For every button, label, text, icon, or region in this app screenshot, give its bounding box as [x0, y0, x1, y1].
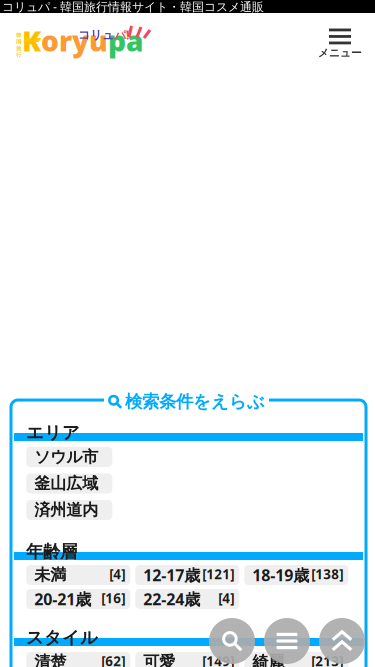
- staticText: 清楚: [34, 652, 66, 667]
- button[interactable]: 20-21歳: [26, 589, 130, 609]
- staticText: パ!: [114, 27, 129, 43]
- button[interactable]: 可愛: [135, 652, 239, 667]
- staticText: 18-19歳: [252, 564, 309, 586]
- staticText: 検索条件をえらぶ: [125, 391, 265, 412]
- staticText: y: [72, 22, 89, 59]
- staticText: K: [22, 22, 41, 59]
- staticText: [4]: [109, 565, 125, 583]
- staticText: メニュー: [318, 46, 362, 59]
- staticText: u: [89, 29, 108, 66]
- button[interactable]: 18-19歳: [244, 565, 348, 585]
- staticText: y: [72, 29, 89, 66]
- button[interactable]: メニュー: [264, 618, 310, 664]
- staticText: [62]: [101, 652, 125, 667]
- staticText: [138]: [311, 565, 343, 583]
- staticText: p: [108, 22, 126, 59]
- staticText: a: [126, 29, 143, 66]
- staticText: K: [22, 29, 41, 66]
- staticText: u: [89, 22, 108, 59]
- button[interactable]: メニュー: [318, 28, 362, 60]
- staticText: 20-21歳: [34, 588, 91, 610]
- staticText: [16]: [101, 589, 125, 607]
- staticText: 可愛: [143, 652, 175, 667]
- staticText: r: [59, 22, 72, 59]
- staticText: [121]: [202, 565, 234, 583]
- staticText: r: [59, 29, 72, 66]
- staticText: 済州道内: [34, 500, 98, 520]
- staticText: 未満: [34, 565, 66, 585]
- staticText: 12-17歳: [143, 564, 200, 586]
- staticText: p: [108, 29, 126, 66]
- button[interactable]: 釜山広域: [26, 473, 112, 493]
- staticText: a: [126, 22, 143, 59]
- staticText: コリュ: [78, 28, 114, 42]
- button[interactable]: 12-17歳: [135, 565, 239, 585]
- staticText: ソウル市: [34, 447, 98, 467]
- staticText: 年齢層: [26, 541, 77, 562]
- button[interactable]: 未満: [26, 565, 130, 585]
- button[interactable]: 検索: [209, 618, 255, 664]
- staticText: スタイル: [26, 627, 98, 648]
- button[interactable]: 済州道内: [26, 500, 112, 520]
- button[interactable]: 綺麗: [244, 652, 348, 667]
- button[interactable]: ソウル市: [26, 447, 112, 467]
- staticText: o: [41, 29, 59, 66]
- staticText: コリュパ - 韓国旅行情報サイト・韓国コスメ通販: [2, 0, 264, 14]
- staticText: 綺麗: [252, 652, 284, 667]
- button[interactable]: 清楚: [26, 652, 130, 667]
- staticText: 韓国旅行: [16, 32, 21, 58]
- staticText: [213]: [311, 652, 343, 667]
- staticText: エリア: [26, 422, 80, 443]
- staticText: [149]: [202, 652, 234, 667]
- staticText: 22-24歳: [143, 588, 200, 610]
- staticText: 釜山広域: [34, 474, 98, 493]
- button[interactable]: ページトップへ戻る: [319, 618, 365, 664]
- button[interactable]: 22-24歳: [135, 589, 239, 609]
- staticText: o: [41, 22, 59, 59]
- staticText: [4]: [218, 589, 234, 607]
